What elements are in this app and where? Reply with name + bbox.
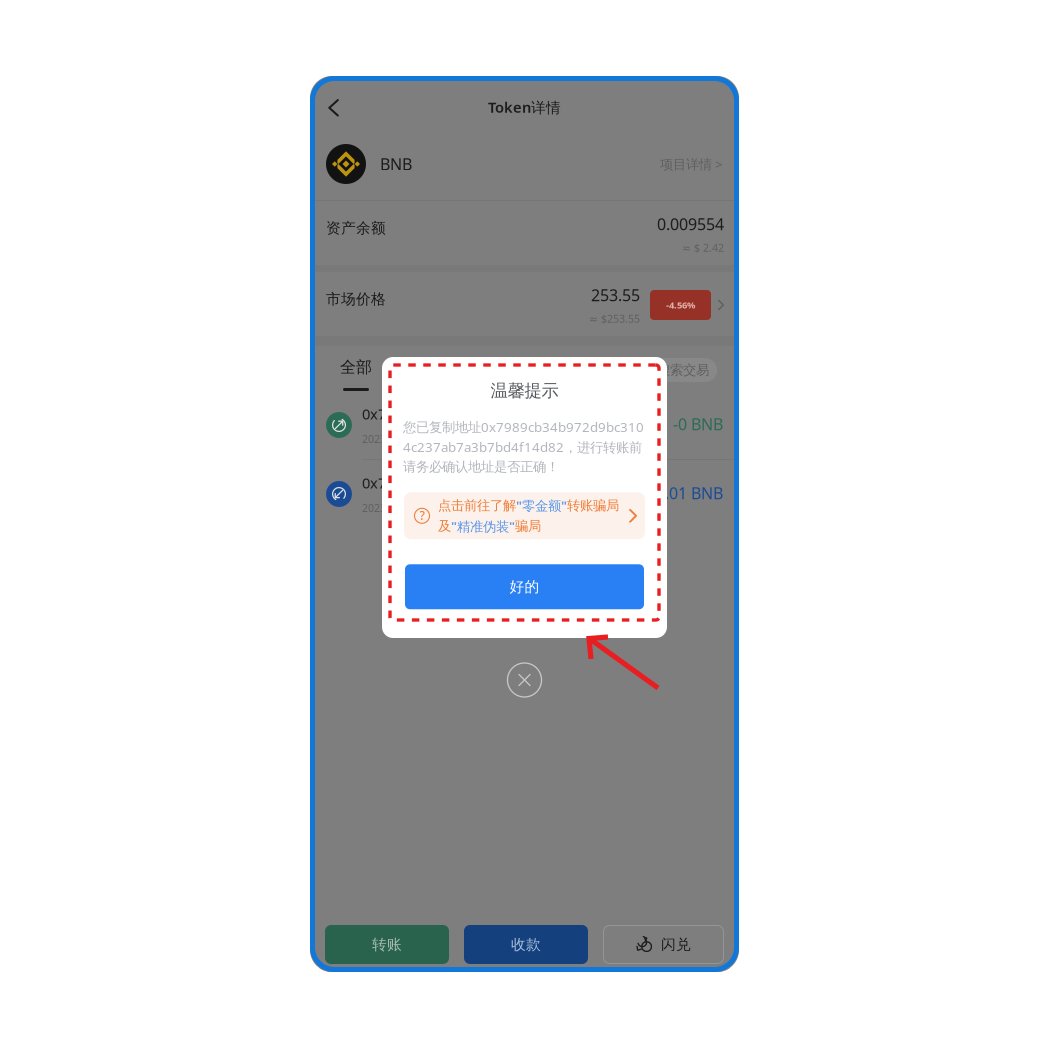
staticText: 资产余额 bbox=[326, 219, 386, 237]
staticText: 请务必确认地址是否正确！ bbox=[403, 459, 559, 475]
staticText: ? bbox=[419, 507, 424, 523]
staticText: 搜索交易 bbox=[657, 362, 709, 378]
staticText: 全部 bbox=[340, 357, 372, 377]
staticText: 转账 bbox=[372, 935, 402, 953]
button[interactable]: 0x7989cb34b9… bbox=[310, 460, 739, 528]
staticText: 253.55 bbox=[591, 284, 640, 305]
button[interactable]: 好的 bbox=[405, 564, 644, 609]
button[interactable]: Back bbox=[313, 88, 353, 128]
staticText: 闪兑 bbox=[661, 935, 691, 953]
staticText: 项目详情 > bbox=[660, 155, 723, 173]
button[interactable]: 搜索交易 bbox=[632, 358, 717, 382]
staticText: 骗局 bbox=[515, 518, 541, 534]
staticText: 0.01 BNB bbox=[656, 482, 723, 504]
staticText: 0.009554 bbox=[657, 213, 724, 234]
staticText: 4c237ab7a3b7bd4f14d82，进行转账前 bbox=[403, 438, 642, 456]
staticText: 0x7989cb34b9… bbox=[362, 404, 471, 424]
button[interactable]: 0x7989cb34b9… bbox=[310, 391, 739, 459]
staticText: 0x7989cb34b9… bbox=[362, 473, 471, 493]
staticText: 及 bbox=[438, 518, 451, 534]
staticText: 温馨提示 bbox=[490, 380, 558, 401]
staticText: 市场价格 bbox=[326, 290, 386, 308]
button[interactable]: BNB bbox=[310, 128, 739, 200]
staticText: "精准伪装" bbox=[451, 517, 515, 535]
button[interactable]: 转账 bbox=[325, 925, 449, 964]
staticText: 2023-10-11 09:05 bbox=[362, 501, 446, 515]
staticText: "零金额" bbox=[516, 497, 567, 514]
staticText: 收款 bbox=[511, 935, 541, 953]
staticText: ≈ $253.55 bbox=[589, 311, 640, 326]
staticText: 好的 bbox=[509, 578, 539, 596]
staticText: 2023-10-12 14:22 bbox=[362, 432, 446, 446]
staticText: 您已复制地址0x7989cb34b972d9bc310 bbox=[403, 418, 644, 436]
button[interactable]: 收款 bbox=[464, 925, 588, 964]
staticText: BNB bbox=[380, 153, 412, 175]
button[interactable]: ? bbox=[404, 492, 645, 539]
staticText: 转账骗局 bbox=[567, 497, 619, 514]
button[interactable]: 闪兑 bbox=[603, 925, 724, 964]
staticText: Token详情 bbox=[488, 97, 561, 117]
staticText: ≈ $ 2.42 bbox=[682, 240, 724, 255]
staticText: -0 BNB bbox=[673, 413, 723, 435]
staticText: 点击前往了解 bbox=[438, 497, 516, 514]
staticText: -4.56% bbox=[666, 299, 695, 311]
button[interactable]: 全部 bbox=[340, 346, 372, 391]
